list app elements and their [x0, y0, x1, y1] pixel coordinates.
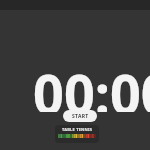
button[interactable]: START [63, 110, 97, 122]
other: Activity intensity bar [58, 134, 96, 138]
staticText: 00:00 [33, 56, 150, 112]
staticText: START [72, 113, 89, 120]
button[interactable]: TABLE TENNIS [55, 125, 99, 143]
staticText: TABLE TENNIS [62, 127, 93, 132]
